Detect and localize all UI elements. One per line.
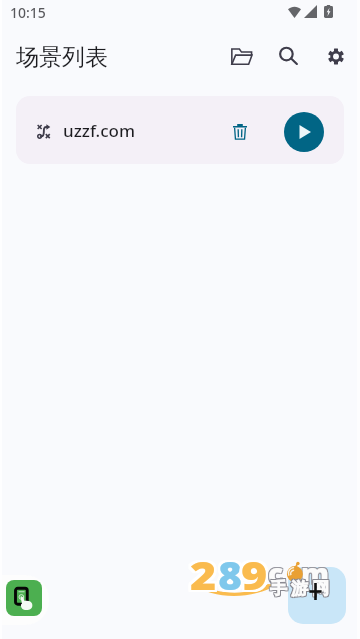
staticText: m — [302, 555, 331, 593]
button[interactable]: Search — [266, 34, 310, 78]
staticText: c — [269, 553, 285, 591]
staticText: 8 — [220, 548, 245, 600]
staticText: c — [267, 555, 283, 593]
staticText: 9 — [240, 549, 267, 601]
staticText: 8 — [217, 551, 242, 603]
staticText: 2 — [188, 548, 215, 600]
staticText: 手 — [269, 579, 286, 600]
staticText: 9 — [239, 550, 266, 602]
staticText: 2 — [189, 550, 216, 602]
staticText: 2 — [190, 551, 217, 603]
staticText: 网 — [313, 579, 330, 600]
staticText: 9 — [242, 551, 269, 603]
staticText: 手 — [269, 577, 286, 598]
button[interactable]: Auto clicker — [6, 580, 42, 616]
staticText: m — [302, 553, 331, 591]
staticText: 网 — [312, 577, 329, 598]
staticText: 2 — [191, 547, 218, 599]
staticText: 9 — [239, 548, 266, 600]
staticText: 2 — [192, 548, 219, 600]
staticText: 9 — [243, 551, 270, 603]
staticText: 游 — [291, 577, 308, 598]
staticText: 2 — [192, 549, 219, 601]
staticText: 8 — [219, 547, 244, 599]
staticText: m — [301, 553, 330, 591]
staticText: c — [267, 553, 283, 591]
staticText: m — [300, 553, 329, 591]
staticText: 8 — [219, 548, 244, 600]
staticText: 游 — [292, 579, 309, 600]
staticText: 手 — [271, 578, 288, 599]
staticText: 10:15 — [10, 3, 46, 22]
staticText: 8 — [216, 549, 241, 601]
staticText: 8 — [220, 549, 245, 601]
staticText: 2 — [192, 551, 219, 603]
staticText: uzzf.com — [63, 119, 136, 142]
button[interactable]: Settings — [314, 34, 358, 78]
staticText: m — [301, 554, 330, 592]
staticText: 2 — [188, 549, 215, 601]
staticText: 手 — [271, 579, 288, 600]
staticText: c — [268, 554, 284, 592]
staticText: 2 — [191, 548, 218, 600]
staticText: 网 — [313, 577, 330, 598]
staticText: 2 — [191, 551, 218, 603]
staticText: 9 — [239, 551, 266, 603]
staticText: 网 — [313, 578, 330, 599]
staticText: m — [300, 554, 329, 592]
staticText: 8 — [220, 550, 245, 602]
staticText: 手 — [271, 577, 288, 598]
staticText: c — [267, 554, 283, 592]
button[interactable]: Play — [284, 112, 324, 152]
staticText: 9 — [240, 548, 267, 600]
staticText: 8 — [220, 551, 245, 603]
staticText: 2 — [192, 547, 219, 599]
staticText: 9 — [241, 549, 268, 601]
staticText: 8 — [217, 548, 242, 600]
staticText: 9 — [240, 550, 267, 602]
staticText: 手 — [270, 578, 287, 599]
staticText: 手 — [269, 578, 286, 599]
staticText: 8 — [220, 547, 245, 599]
staticText: 2 — [189, 549, 216, 601]
staticText: c — [268, 553, 284, 591]
staticText: 9 — [243, 548, 270, 600]
staticText: 手 — [270, 579, 287, 600]
staticText: 9 — [243, 550, 270, 602]
staticText: 2 — [192, 550, 219, 602]
staticText: 8 — [219, 550, 244, 602]
staticText: 8 — [217, 547, 242, 599]
staticText: 2 — [190, 550, 217, 602]
staticText: 9 — [241, 547, 268, 599]
staticText: 2 — [190, 549, 217, 601]
staticText: 9 — [242, 548, 269, 600]
staticText: 8 — [218, 550, 243, 602]
staticText: 游 — [292, 577, 309, 598]
staticText: 8 — [216, 551, 241, 603]
staticText: 9 — [239, 549, 266, 601]
staticText: 游 — [290, 577, 307, 598]
staticText: 2 — [190, 547, 217, 599]
staticText: 8 — [217, 550, 242, 602]
staticText: c — [269, 554, 285, 592]
button[interactable]: uzzf.com — [16, 96, 344, 164]
staticText: 2 — [189, 551, 216, 603]
staticText: 网 — [311, 579, 328, 600]
button[interactable]: Delete — [222, 114, 258, 150]
staticText: 2 — [190, 548, 217, 600]
staticText: 网 — [312, 578, 329, 599]
staticText: 8 — [218, 548, 243, 600]
staticText: 9 — [241, 550, 268, 602]
staticText: 8 — [219, 549, 244, 601]
staticText: 2 — [191, 550, 218, 602]
staticText: 9 — [241, 551, 268, 603]
staticText: 2 — [188, 551, 215, 603]
staticText: 场景列表 — [16, 43, 108, 72]
staticText: 网 — [311, 578, 328, 599]
staticText: 游 — [291, 578, 308, 599]
staticText: 8 — [216, 548, 241, 600]
staticText: 9 — [239, 547, 266, 599]
button[interactable]: Open folder — [219, 34, 263, 78]
staticText: 游 — [290, 578, 307, 599]
staticText: c — [269, 555, 285, 593]
